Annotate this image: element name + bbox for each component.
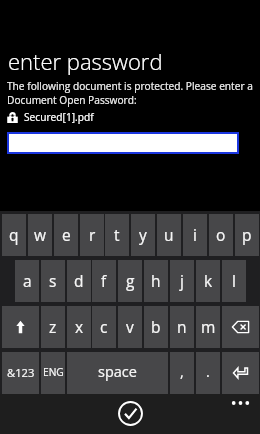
button[interactable]: q xyxy=(2,214,26,256)
staticText: &123 xyxy=(7,365,35,380)
button[interactable]: e xyxy=(54,214,78,256)
staticText: g xyxy=(126,270,135,291)
staticText: m xyxy=(201,316,216,337)
staticText: t xyxy=(114,224,120,245)
button[interactable]: f xyxy=(92,260,116,302)
button[interactable]: m xyxy=(196,306,220,348)
button[interactable]: Shift xyxy=(2,306,39,348)
staticText: i xyxy=(193,224,197,245)
staticText: r xyxy=(89,224,96,245)
staticText: f xyxy=(101,270,107,291)
staticText: c xyxy=(100,316,108,337)
button[interactable]: . xyxy=(196,352,220,394)
staticText: z xyxy=(49,316,57,337)
button[interactable]: g xyxy=(118,260,142,302)
staticText: o xyxy=(216,224,226,245)
button[interactable]: k xyxy=(196,260,220,302)
staticText: n xyxy=(177,316,187,337)
button[interactable]: Backspace xyxy=(222,306,259,348)
button[interactable]: b xyxy=(144,306,168,348)
button[interactable]: r xyxy=(80,214,104,256)
button[interactable]: t xyxy=(105,214,129,256)
staticText: l xyxy=(232,270,236,291)
staticText: a xyxy=(23,270,32,291)
button[interactable]: w xyxy=(28,214,52,256)
staticText: Secured[1].pdf xyxy=(24,110,94,124)
button[interactable]: ENG xyxy=(41,352,65,394)
button[interactable]: c xyxy=(92,306,116,348)
staticText: y xyxy=(139,224,147,245)
button[interactable]: s xyxy=(41,260,65,302)
staticText: b xyxy=(151,316,161,337)
button[interactable]: , xyxy=(170,352,194,394)
button[interactable]: p xyxy=(235,214,259,256)
staticText: p xyxy=(242,224,252,245)
staticText: q xyxy=(9,224,19,245)
button[interactable]: v xyxy=(118,306,142,348)
staticText: , xyxy=(180,362,184,382)
button[interactable]: More options xyxy=(225,394,255,412)
button[interactable]: n xyxy=(170,306,194,348)
staticText: k xyxy=(204,270,213,291)
button[interactable]: a xyxy=(15,260,39,302)
button[interactable]: i xyxy=(183,214,207,256)
staticText: s xyxy=(49,270,57,291)
button[interactable]: u xyxy=(157,214,181,256)
staticText: enter password xyxy=(8,46,163,76)
staticText: ENG xyxy=(43,365,64,379)
staticText: e xyxy=(62,224,71,245)
staticText: d xyxy=(74,270,84,291)
staticText: The following document is protected. Ple… xyxy=(7,79,260,107)
button[interactable]: space xyxy=(67,352,168,394)
button[interactable]: o xyxy=(209,214,233,256)
button[interactable]: d xyxy=(67,260,91,302)
staticText: u xyxy=(164,224,174,245)
button[interactable]: j xyxy=(170,260,194,302)
button[interactable]: l xyxy=(222,260,246,302)
staticText: space xyxy=(98,362,137,382)
staticText: w xyxy=(34,224,47,245)
button[interactable]: Enter xyxy=(222,352,259,394)
button[interactable]: h xyxy=(144,260,168,302)
staticText: v xyxy=(126,316,134,337)
button[interactable]: Accept xyxy=(114,397,146,429)
button[interactable]: z xyxy=(41,306,65,348)
staticText: x xyxy=(75,316,84,337)
button[interactable]: x xyxy=(67,306,91,348)
staticText: . xyxy=(206,362,210,382)
button[interactable]: y xyxy=(131,214,155,256)
staticText: j xyxy=(180,270,184,291)
button[interactable]: &123 xyxy=(2,352,39,394)
staticText: h xyxy=(151,270,161,291)
